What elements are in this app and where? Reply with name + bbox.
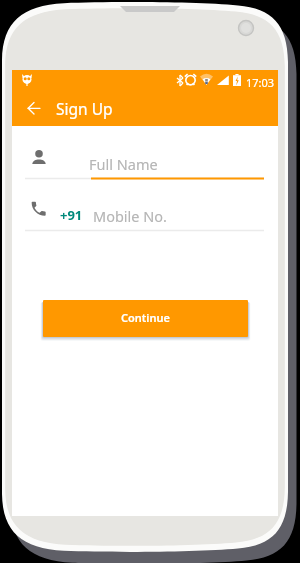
staticText: Sign Up xyxy=(56,98,113,119)
staticText: 17:03 xyxy=(246,75,275,90)
button[interactable]: Continue xyxy=(43,300,248,337)
button[interactable]: +91 xyxy=(12,193,278,231)
staticText: Full Name xyxy=(89,154,158,174)
button[interactable]: Back xyxy=(18,94,46,122)
staticText: Mobile No. xyxy=(93,206,167,226)
staticText: +91 xyxy=(60,206,83,224)
button[interactable]: Full Name xyxy=(12,141,278,179)
staticText: Continue xyxy=(121,310,170,325)
